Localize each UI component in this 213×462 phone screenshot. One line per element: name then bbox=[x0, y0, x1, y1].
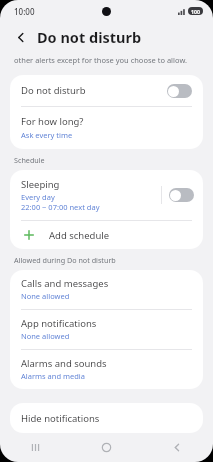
staticText: None allowed bbox=[21, 291, 70, 301]
button[interactable]: Toggle bbox=[169, 188, 194, 202]
button[interactable]: For how long? bbox=[10, 107, 203, 149]
staticText: other alerts except for those you choose… bbox=[14, 55, 187, 65]
staticText: Calls and messages bbox=[21, 277, 109, 290]
staticText: 100 bbox=[191, 8, 200, 15]
button[interactable]: Hide notifications bbox=[10, 403, 203, 433]
staticText: App notifications bbox=[21, 317, 97, 330]
button[interactable]: App notifications bbox=[10, 310, 203, 349]
staticText: Do not disturb bbox=[37, 27, 142, 47]
staticText: 22:00 ~ 07:00 next day bbox=[21, 202, 100, 212]
button[interactable]: Do not disturb bbox=[10, 75, 203, 106]
staticText: Ask every time bbox=[21, 130, 73, 140]
button[interactable]: Back bbox=[11, 27, 31, 47]
staticText: Alarms and media bbox=[21, 371, 85, 381]
staticText: None allowed bbox=[21, 331, 70, 341]
button[interactable]: Sleeping bbox=[10, 170, 203, 220]
staticText: For how long? bbox=[21, 115, 84, 128]
button[interactable]: Calls and messages bbox=[10, 270, 203, 309]
staticText: 10:00 bbox=[14, 6, 35, 17]
button[interactable]: Toggle bbox=[167, 84, 192, 98]
staticText: Schedule bbox=[14, 155, 45, 165]
button[interactable]: Alarms and sounds bbox=[10, 350, 203, 389]
button[interactable]: Recent apps bbox=[0, 433, 71, 462]
staticText: Alarms and sounds bbox=[21, 357, 107, 370]
staticText: Do not disturb bbox=[21, 84, 86, 97]
staticText: Sleeping bbox=[21, 178, 60, 191]
button[interactable]: Back bbox=[142, 433, 213, 462]
staticText: Allowed during Do not disturb bbox=[14, 255, 116, 265]
button[interactable]: Add schedule bbox=[10, 221, 203, 249]
staticText: Hide notifications bbox=[21, 412, 100, 425]
staticText: Add schedule bbox=[49, 229, 110, 242]
button[interactable]: Home bbox=[71, 433, 142, 462]
staticText: Every day bbox=[21, 192, 55, 202]
